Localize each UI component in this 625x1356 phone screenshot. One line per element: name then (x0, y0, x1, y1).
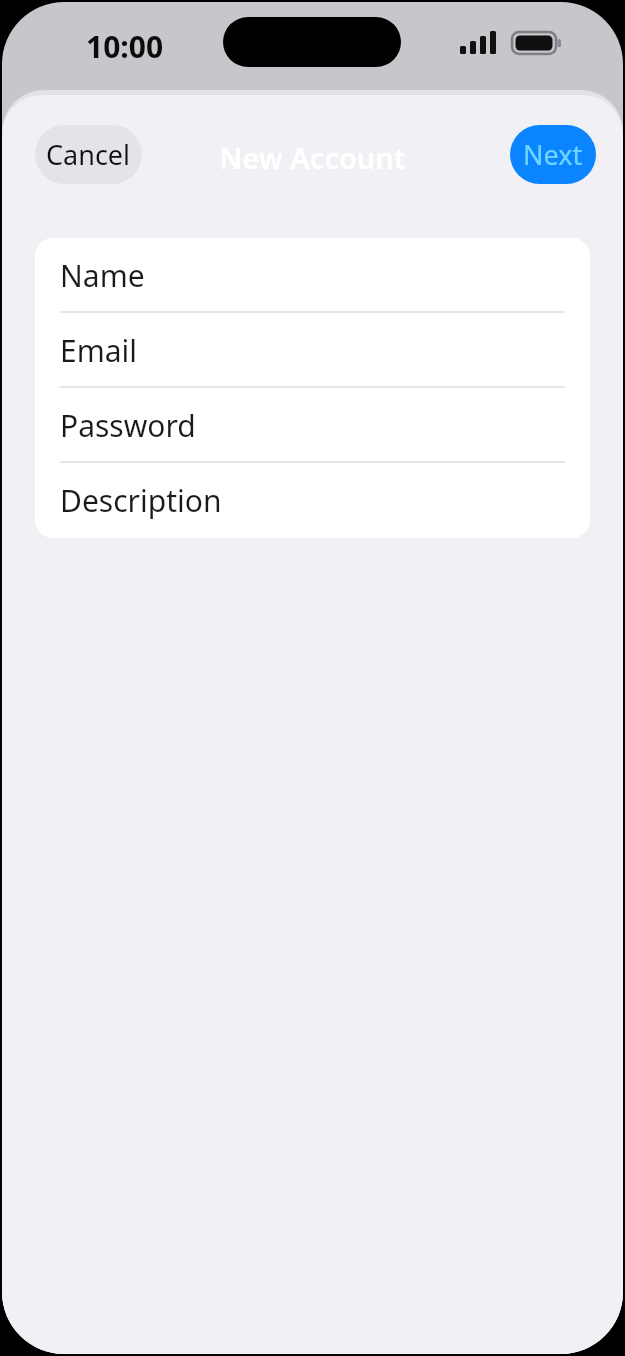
staticText: Email (60, 330, 138, 371)
button[interactable]: Next (510, 125, 596, 184)
button[interactable]: Name (35, 238, 590, 313)
button[interactable]: Cancel (35, 125, 142, 184)
button[interactable]: Email (35, 313, 590, 388)
staticText: New Account (2, 138, 623, 177)
staticText: Next (523, 136, 583, 173)
button[interactable]: Password (35, 388, 590, 463)
staticText: Name (60, 255, 145, 296)
button[interactable]: Description (35, 463, 590, 538)
staticText: Password (60, 405, 196, 446)
staticText: Description (60, 480, 222, 521)
staticText: Cancel (46, 136, 131, 173)
staticText: 10:00 (86, 26, 164, 67)
